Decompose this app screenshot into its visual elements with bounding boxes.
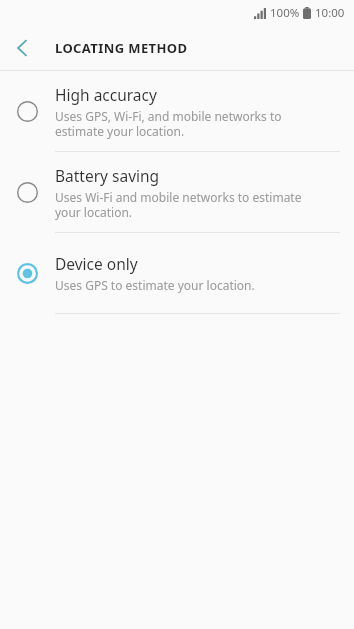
staticText: 10:00: [315, 5, 345, 21]
button[interactable]: Battery saving: [0, 152, 354, 232]
staticText: Battery saving: [55, 165, 160, 186]
staticText: Uses Wi-Fi and mobile networks to estima…: [55, 189, 302, 220]
button[interactable]: High accuracy: [0, 71, 354, 151]
staticText: High accuracy: [55, 84, 157, 105]
staticText: Device only: [55, 253, 138, 274]
staticText: LOCATING METHOD: [55, 39, 188, 57]
staticText: Uses GPS to estimate your location.: [55, 277, 255, 293]
button[interactable]: Device only: [0, 233, 354, 313]
staticText: 100%: [270, 5, 300, 21]
button[interactable]: Back: [0, 26, 44, 70]
staticText: Uses GPS, Wi-Fi, and mobile networks to …: [55, 108, 282, 139]
